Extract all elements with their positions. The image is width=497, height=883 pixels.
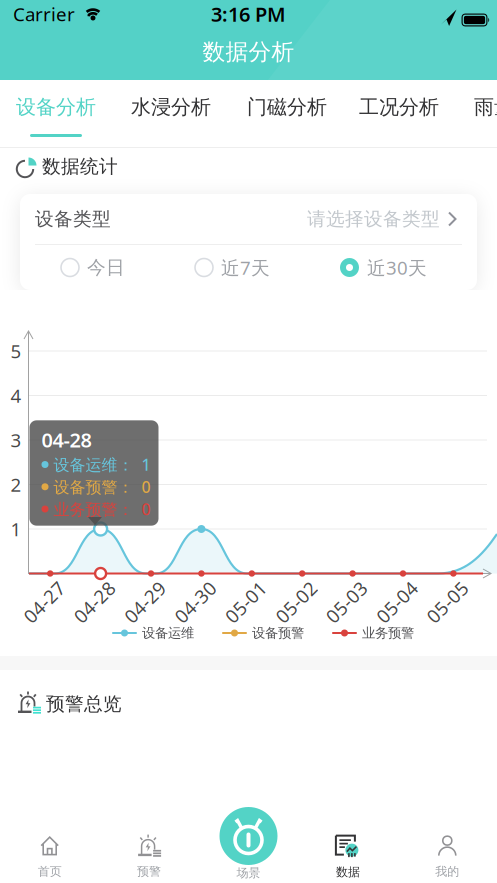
button[interactable]: 设备类型	[20, 194, 477, 244]
staticText: 设备分析	[16, 95, 96, 119]
staticText: 设备类型	[35, 207, 111, 230]
staticText: 设备预警： 0	[53, 476, 150, 497]
staticText: 请选择设备类型	[307, 207, 440, 230]
staticText: 近30天	[367, 255, 427, 280]
staticText: 首页	[38, 864, 62, 879]
button[interactable]: 场景	[219, 807, 277, 865]
button[interactable]: 门磁分析	[247, 95, 327, 119]
staticText: 04-28	[70, 590, 120, 614]
staticText: 04-28	[41, 426, 91, 453]
staticText: 1	[10, 517, 21, 541]
button[interactable]: 我的	[435, 835, 459, 879]
button[interactable]: 首页	[38, 835, 62, 879]
staticText: 04-29	[120, 590, 170, 614]
staticText: 数据	[336, 865, 360, 879]
button[interactable]: 雨量分析	[474, 95, 497, 119]
staticText: 05-01	[221, 590, 271, 614]
staticText: 04-30	[170, 590, 220, 614]
staticText: 我的	[435, 864, 459, 879]
staticText: 05-03	[322, 590, 372, 614]
button[interactable]: 今日	[61, 256, 125, 279]
staticText: 设备运维： 1	[53, 454, 150, 475]
staticText: 今日	[87, 256, 125, 279]
button[interactable]: 近30天	[340, 255, 427, 280]
staticText: 4	[10, 383, 21, 408]
staticText: 场景	[236, 866, 260, 880]
staticText: 预警	[137, 864, 161, 879]
button[interactable]: 数据	[335, 835, 361, 879]
staticText: 雨量分析	[474, 95, 497, 119]
staticText: 05-04	[372, 590, 422, 614]
staticText: 预警总览	[46, 692, 122, 715]
button[interactable]: 工况分析	[359, 95, 439, 119]
staticText: 业务预警： 0	[53, 498, 150, 520]
button[interactable]: 预警	[137, 834, 161, 879]
staticText: 04-27	[19, 590, 69, 614]
staticText: 业务预警	[362, 625, 414, 641]
staticText: 近7天	[221, 255, 270, 280]
staticText: 05-02	[271, 590, 321, 614]
staticText: 设备运维	[142, 625, 194, 641]
staticText: 门磁分析	[247, 95, 327, 119]
button[interactable]: 水浸分析	[131, 95, 211, 119]
button[interactable]: 设备分析	[16, 95, 96, 119]
staticText: Carrier	[13, 2, 75, 26]
staticText: 5	[10, 339, 21, 363]
staticText: 设备预警	[252, 625, 304, 641]
staticText: 3	[10, 428, 21, 452]
staticText: 水浸分析	[131, 95, 211, 119]
staticText: 05-05	[422, 590, 472, 614]
staticText: 2	[10, 472, 21, 497]
staticText: 3:16 PM	[211, 1, 286, 27]
staticText: 工况分析	[359, 95, 439, 119]
button[interactable]: 近7天	[195, 255, 270, 280]
staticText: 数据分析	[202, 38, 294, 66]
staticText: 数据统计	[42, 155, 118, 178]
